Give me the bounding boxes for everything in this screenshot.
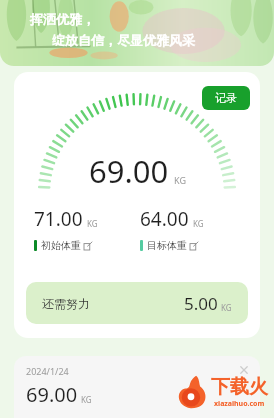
- staticText: KG: [174, 174, 186, 186]
- staticText: xiazaihuo.com: [214, 399, 265, 409]
- staticText: 64.00: [140, 206, 189, 232]
- staticText: KG: [221, 302, 232, 313]
- staticText: 绽放自信，尽显优雅风采: [52, 32, 195, 48]
- button[interactable]: 2024/1/24: [14, 356, 260, 418]
- staticText: 记录: [215, 91, 237, 105]
- staticText: 69.00: [89, 150, 169, 192]
- button[interactable]: 记录: [202, 86, 250, 110]
- button[interactable]: 64.00: [140, 206, 246, 252]
- button[interactable]: 还需努力: [26, 282, 248, 324]
- staticText: 目标体重: [147, 239, 187, 252]
- staticText: KG: [87, 218, 98, 229]
- staticText: 挥洒优雅，: [30, 11, 95, 27]
- button[interactable]: 71.00: [34, 206, 140, 252]
- staticText: KG: [81, 394, 92, 405]
- staticText: 69.00: [26, 381, 78, 408]
- staticText: 初始体重: [41, 239, 81, 252]
- staticText: 2024/1/24: [26, 365, 69, 377]
- button[interactable]: Close: [236, 362, 252, 378]
- staticText: 71.00: [34, 206, 83, 232]
- staticText: 还需努力: [42, 296, 90, 311]
- staticText: KG: [193, 218, 204, 229]
- staticText: 5.00: [184, 292, 218, 315]
- staticText: 下载火: [211, 375, 268, 399]
